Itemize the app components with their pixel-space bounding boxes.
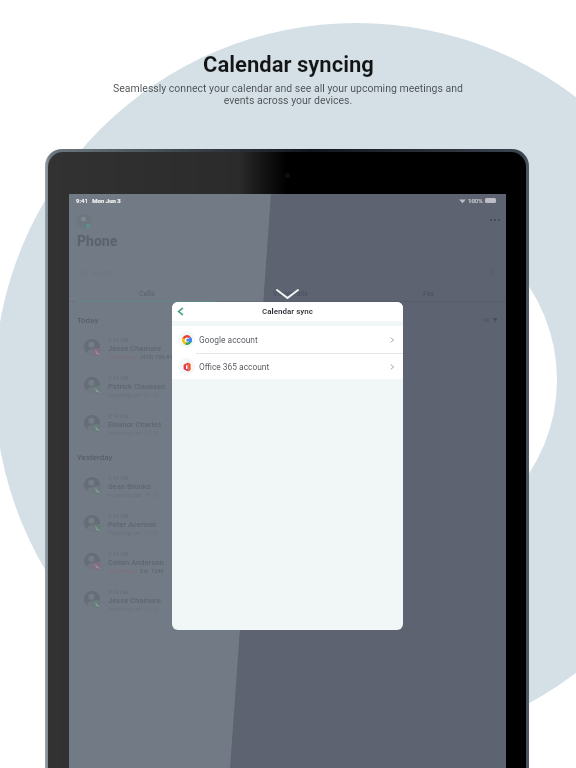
button[interactable]: Back bbox=[175, 306, 186, 317]
staticText: 9:14 AM bbox=[108, 375, 129, 381]
staticText: Office 365 account bbox=[199, 362, 270, 372]
button[interactable]: Collapse bbox=[277, 290, 298, 298]
staticText: All bbox=[483, 316, 490, 323]
staticText: Calendar syncing bbox=[203, 52, 374, 78]
staticText: 9:14 AM bbox=[108, 475, 129, 481]
staticText: Sean Brooks bbox=[108, 482, 151, 491]
staticText: Google account bbox=[199, 335, 258, 345]
button[interactable]: Office 365 account bbox=[172, 354, 403, 379]
button[interactable]: Google account bbox=[172, 326, 403, 353]
staticText: Call Missed bbox=[108, 568, 137, 575]
staticText: 9:14 AM bbox=[108, 589, 129, 595]
staticText: 9:14 AM bbox=[108, 337, 129, 343]
staticText: Calendar sync bbox=[262, 307, 313, 316]
staticText: Call Missed bbox=[108, 354, 137, 361]
staticText: Ext. 1249 bbox=[140, 568, 164, 575]
staticText: Yesterday bbox=[77, 453, 113, 462]
button[interactable]: More options bbox=[490, 218, 500, 222]
staticText: Jesse Chamore bbox=[108, 596, 161, 605]
staticText: Celian Anderson bbox=[108, 558, 164, 567]
button[interactable]: 9:14 AM bbox=[69, 332, 506, 366]
staticText: 100% bbox=[468, 197, 483, 204]
button[interactable]: Voicemails bbox=[273, 290, 308, 298]
button[interactable]: All bbox=[483, 316, 498, 323]
staticText: Phone bbox=[77, 233, 118, 249]
staticText: Jesse Chamore bbox=[108, 344, 161, 353]
staticText: 9:14 AM bbox=[108, 551, 129, 557]
staticText: Seamlessly connect your calendar and see… bbox=[111, 82, 465, 107]
button[interactable]: 9:14 AM bbox=[69, 508, 506, 542]
button[interactable]: Fax bbox=[423, 290, 435, 298]
button[interactable]: 9:14 AM bbox=[69, 470, 506, 504]
button[interactable]: 9:14 AM bbox=[69, 546, 506, 580]
button[interactable]: Calls bbox=[139, 290, 155, 298]
button[interactable]: 9:14 AM bbox=[69, 370, 506, 404]
button[interactable]: 9:14 AM bbox=[69, 584, 506, 618]
staticText: Eleanor Charles bbox=[108, 420, 162, 429]
staticText: Today bbox=[77, 316, 99, 325]
staticText: Peter Acerson bbox=[108, 520, 157, 529]
staticText: 9:14 AM bbox=[108, 413, 129, 419]
staticText: Patrick Claussen bbox=[108, 382, 166, 391]
button[interactable]: 9:14 AM bbox=[69, 408, 506, 442]
staticText: 9:14 AM bbox=[108, 513, 129, 519]
staticText: 9:41 Mon Jun 3 bbox=[76, 197, 121, 204]
button[interactable]: Profile bbox=[77, 214, 91, 228]
staticText: (415) 756-8123 bbox=[140, 354, 179, 361]
